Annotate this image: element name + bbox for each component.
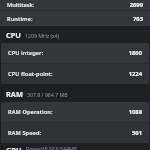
staticText: RAM Speed: bbox=[8, 129, 42, 137]
staticText: 1800 bbox=[128, 49, 142, 57]
staticText: 501 bbox=[132, 129, 142, 137]
staticText: CPU bbox=[6, 30, 21, 40]
button[interactable]: Multitask: bbox=[0, 0, 150, 10]
staticText: RAM bbox=[6, 89, 23, 99]
staticText: PowerVR SGX 544MP bbox=[26, 145, 77, 150]
staticText: 763 bbox=[133, 15, 143, 23]
staticText: 1209 MHz (x4) bbox=[25, 32, 60, 39]
staticText: 307.8 / 964.7 MB bbox=[27, 91, 68, 98]
button[interactable]: Runtime: bbox=[0, 11, 150, 26]
staticText: Multitask: bbox=[7, 1, 35, 9]
button[interactable]: CPU integer: bbox=[1, 43, 149, 63]
button[interactable]: RAM Operation: bbox=[1, 102, 149, 122]
staticText: 1224 bbox=[128, 70, 142, 78]
button[interactable]: RAM Speed: bbox=[1, 123, 149, 143]
staticText: CPU integer: bbox=[8, 49, 44, 57]
staticText: 2699 bbox=[129, 1, 143, 9]
staticText: Runtime: bbox=[7, 15, 33, 23]
staticText: RAM Operation: bbox=[8, 108, 53, 116]
button[interactable]: CPU float-point: bbox=[1, 64, 149, 84]
staticText: CPU float-point: bbox=[8, 70, 53, 78]
staticText: 1088 bbox=[128, 108, 142, 116]
staticText: GPU bbox=[6, 145, 22, 150]
